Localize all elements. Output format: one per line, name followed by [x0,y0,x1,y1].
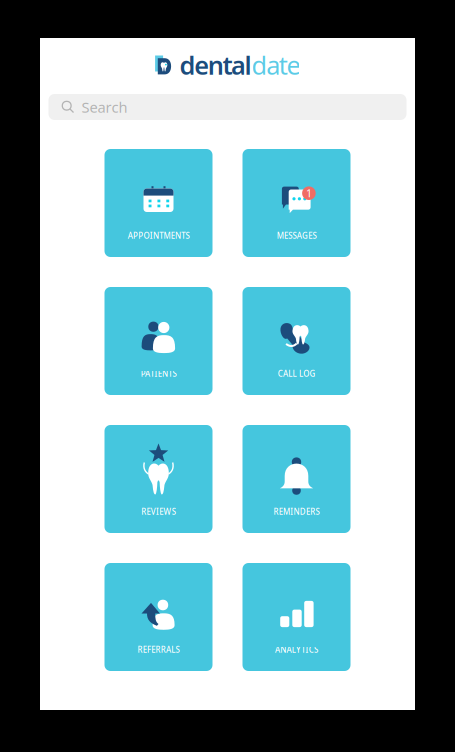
staticText: 1 [306,186,312,200]
button[interactable]: APPOINTMENTS [104,149,212,257]
staticText: REFERRALS [137,644,179,655]
button[interactable]: CALL LOG [242,287,350,395]
button[interactable]: PATIENTS [104,287,212,395]
button[interactable]: REFERRALS [104,563,212,671]
staticText: dental [180,48,252,82]
staticText: ANALYTICS [275,644,318,655]
staticText: APPOINTMENTS [128,230,189,241]
button[interactable]: REVIEWS [104,425,212,533]
staticText: PATIENTS [141,368,176,379]
button[interactable]: 1 [242,149,350,257]
staticText: CALL LOG [278,368,315,379]
staticText: date [252,48,300,82]
button[interactable]: ANALYTICS [242,563,350,671]
button[interactable]: REMINDERS [242,425,350,533]
staticText: REMINDERS [273,506,319,517]
staticText: REVIEWS [141,506,176,517]
staticText: MESSAGES [277,230,316,241]
staticText: Search [81,97,127,117]
